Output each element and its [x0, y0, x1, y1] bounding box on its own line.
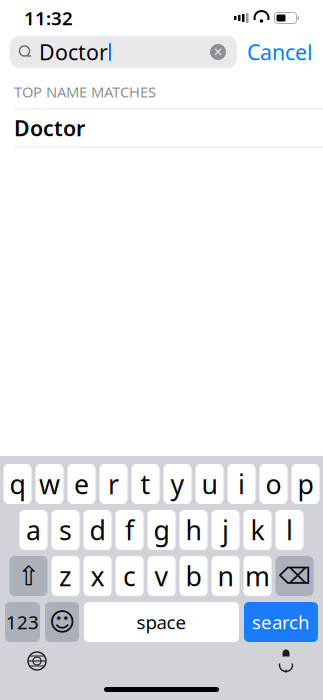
- staticText: i: [238, 466, 245, 502]
- staticText: k: [250, 512, 264, 548]
- staticText: ⇧: [17, 561, 39, 591]
- button[interactable]: 123: [5, 602, 40, 642]
- button[interactable]: n: [211, 556, 239, 596]
- button[interactable]: l: [275, 510, 303, 550]
- button[interactable]: i: [227, 464, 255, 504]
- staticText: h: [185, 512, 201, 548]
- staticText: space: [136, 610, 186, 634]
- staticText: m: [245, 558, 270, 594]
- button[interactable]: v: [147, 556, 175, 596]
- staticText: o: [265, 466, 281, 502]
- staticText: p: [297, 466, 313, 502]
- button[interactable]: c: [115, 556, 143, 596]
- staticText: t: [140, 466, 150, 502]
- button[interactable]: w: [35, 464, 63, 504]
- staticText: 11:32: [24, 6, 73, 30]
- button[interactable]: k: [243, 510, 271, 550]
- button[interactable]: f: [115, 510, 143, 550]
- staticText: n: [217, 558, 233, 594]
- staticText: g: [153, 512, 169, 548]
- button[interactable]: Emoji: [45, 602, 79, 642]
- staticText: r: [108, 466, 119, 502]
- staticText: e: [74, 466, 89, 502]
- button[interactable]: search: [244, 602, 318, 642]
- staticText: l: [286, 512, 293, 548]
- button[interactable]: Cancel: [247, 38, 313, 66]
- staticText: b: [185, 558, 201, 594]
- button[interactable]: r: [99, 464, 127, 504]
- button[interactable]: Dictation: [269, 644, 303, 678]
- staticText: s: [59, 512, 72, 548]
- button[interactable]: s: [51, 510, 79, 550]
- staticText: q: [9, 466, 25, 502]
- button[interactable]: space: [84, 602, 239, 642]
- staticText: Doctor: [14, 114, 85, 142]
- staticText: u: [201, 466, 217, 502]
- staticText: j: [222, 512, 229, 548]
- button[interactable]: g: [147, 510, 175, 550]
- button[interactable]: d: [83, 510, 111, 550]
- button[interactable]: z: [51, 556, 79, 596]
- button[interactable]: p: [291, 464, 319, 504]
- staticText: d: [89, 512, 105, 548]
- staticText: Cancel: [247, 38, 313, 66]
- button[interactable]: h: [179, 510, 207, 550]
- button[interactable]: b: [179, 556, 207, 596]
- staticText: w: [39, 466, 60, 502]
- button[interactable]: Doctor: [0, 109, 323, 146]
- button[interactable]: a: [19, 510, 47, 550]
- button[interactable]: e: [67, 464, 95, 504]
- button[interactable]: Delete: [275, 556, 313, 596]
- staticText: y: [170, 466, 184, 502]
- staticText: f: [125, 512, 134, 548]
- button[interactable]: y: [163, 464, 191, 504]
- staticText: a: [26, 512, 41, 548]
- staticText: z: [59, 558, 72, 594]
- button[interactable]: q: [3, 464, 31, 504]
- button[interactable]: Clear text: [207, 41, 229, 63]
- button[interactable]: x: [83, 556, 111, 596]
- staticText: TOP NAME MATCHES: [14, 82, 156, 101]
- button[interactable]: j: [211, 510, 239, 550]
- staticText: ✕: [213, 45, 223, 59]
- staticText: Doctor: [39, 38, 108, 66]
- button[interactable]: m: [243, 556, 271, 596]
- staticText: c: [123, 558, 136, 594]
- button[interactable]: Shift: [9, 556, 47, 596]
- staticText: ☺: [49, 608, 75, 636]
- button[interactable]: Next keyboard: [20, 644, 54, 678]
- button[interactable]: t: [131, 464, 159, 504]
- staticText: ⌫: [278, 563, 310, 589]
- staticText: v: [154, 558, 168, 594]
- staticText: search: [252, 610, 310, 634]
- staticText: x: [90, 558, 104, 594]
- button[interactable]: o: [259, 464, 287, 504]
- button[interactable]: u: [195, 464, 223, 504]
- staticText: 123: [6, 610, 39, 634]
